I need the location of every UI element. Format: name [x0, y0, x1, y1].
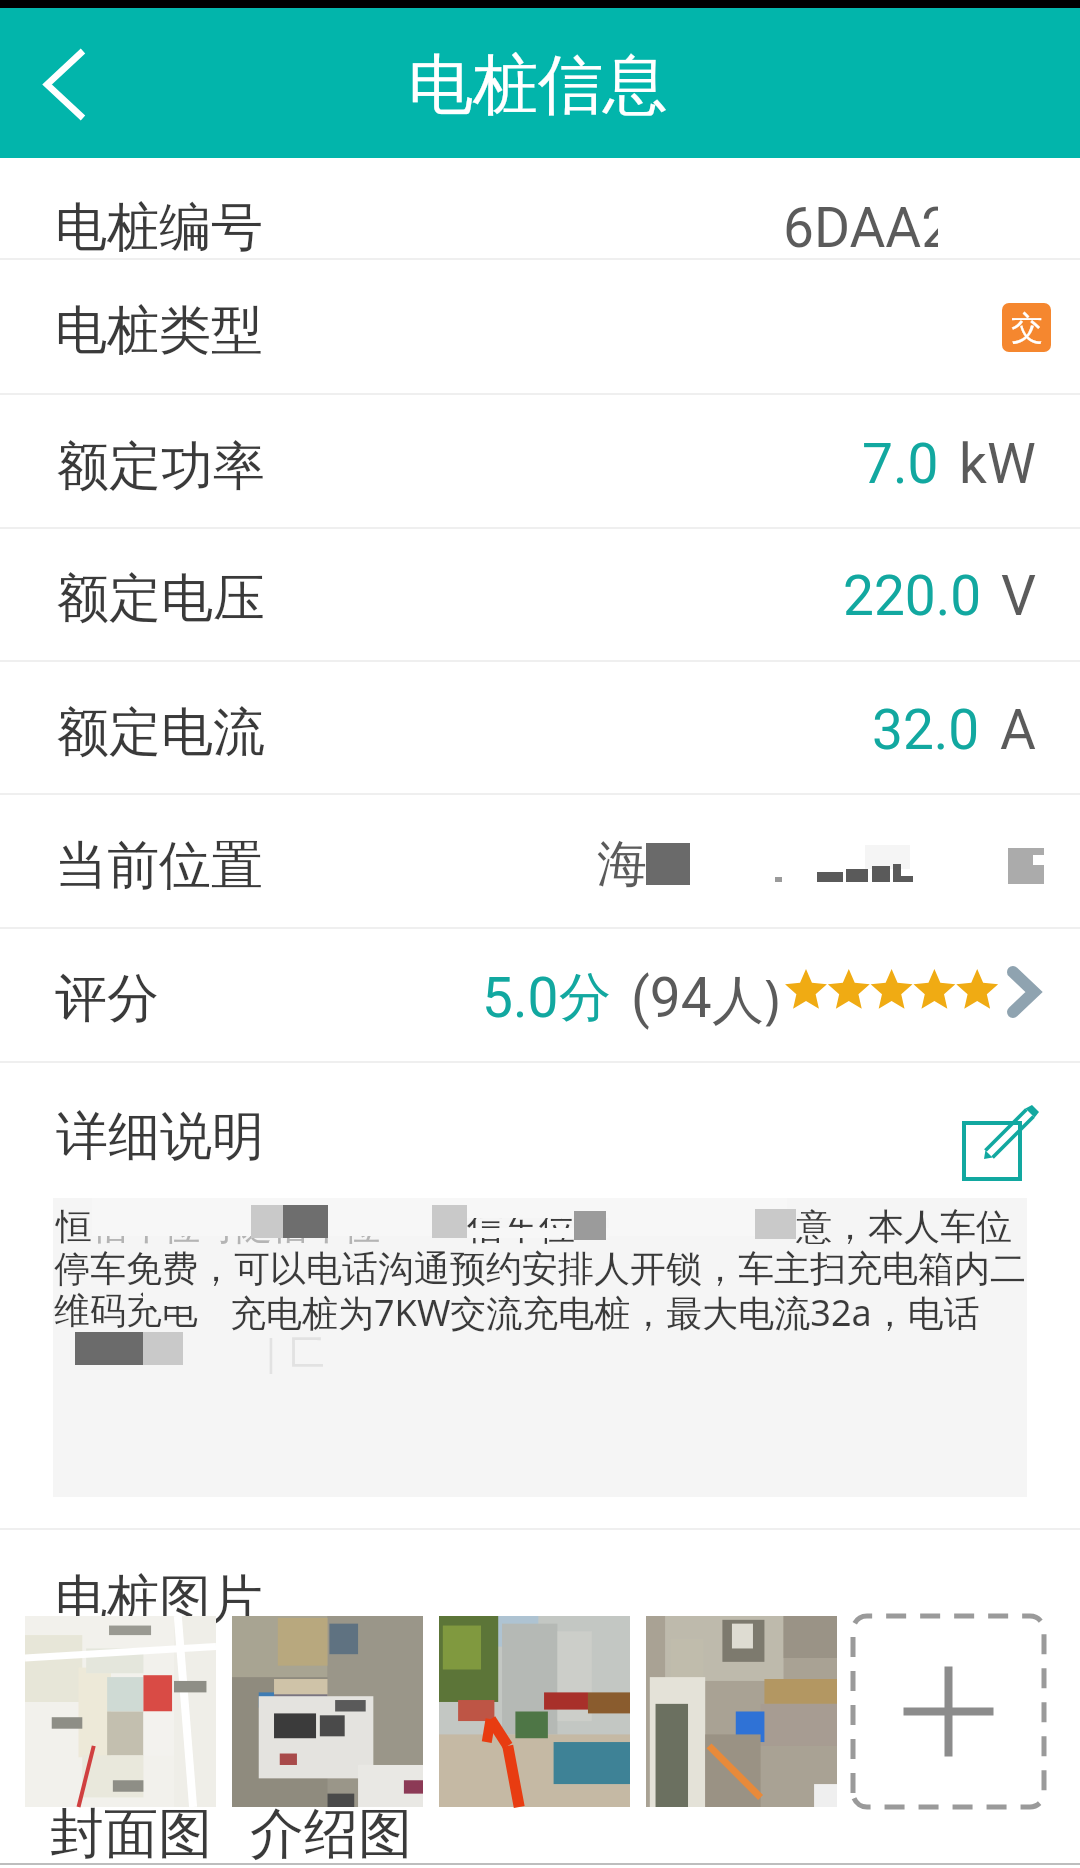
button[interactable]: [25, 1616, 216, 1807]
button[interactable]: Back: [0, 8, 175, 158]
staticText: kW: [959, 432, 1036, 496]
staticText: 5.0: [482, 966, 559, 1030]
staticText: 充电桩为7KW交流充电桩，最大电流32a，电话: [230, 1288, 980, 1337]
staticText: 介绍图: [250, 1800, 412, 1868]
staticText: 交: [1011, 308, 1043, 348]
button[interactable]: Edit description: [960, 1106, 1038, 1184]
staticText: 分: [559, 965, 611, 1031]
staticText: 7.0: [862, 432, 939, 496]
staticText: 电桩图片: [55, 1567, 263, 1633]
staticText: ｜匚: [253, 1330, 325, 1375]
staticText: 封面图: [50, 1800, 212, 1868]
staticText: 电桩信息: [408, 44, 668, 126]
staticText: 详细说明: [56, 1104, 264, 1170]
staticText: 信车位可随信车位: [92, 1204, 380, 1249]
staticText: 电桩编号: [55, 195, 263, 261]
button[interactable]: [232, 1616, 423, 1807]
staticText: V: [1001, 564, 1037, 628]
staticText: 额定电流: [57, 700, 265, 766]
staticText: 人): [712, 962, 780, 1033]
button[interactable]: [646, 1616, 837, 1807]
button[interactable]: Add photo: [853, 1616, 1044, 1807]
staticText: 海: [597, 833, 647, 896]
staticText: 信车位: [467, 1204, 575, 1249]
staticText: 电桩类型: [55, 298, 263, 364]
button[interactable]: [0, 929, 1080, 1061]
staticText: 当前位置: [55, 833, 263, 899]
staticText: 32.0: [872, 698, 980, 762]
button[interactable]: 交: [1002, 303, 1051, 352]
staticText: 220.0: [843, 564, 982, 628]
staticText: (94: [631, 966, 712, 1030]
staticText: 停车免费，可以电话沟通预约安排人开锁，车主扫充电箱内二: [54, 1246, 1026, 1291]
staticText: 额定功率: [57, 434, 265, 500]
staticText: 额定电压: [57, 566, 265, 632]
staticText: 恒: [56, 1204, 92, 1249]
staticText: A: [1000, 698, 1036, 762]
staticText: 6DAA2: [783, 196, 938, 258]
button[interactable]: [439, 1616, 630, 1807]
staticText: 维码充电: [54, 1288, 198, 1333]
staticText: 意，本人车位: [796, 1204, 1012, 1249]
staticText: 评分: [55, 966, 159, 1032]
